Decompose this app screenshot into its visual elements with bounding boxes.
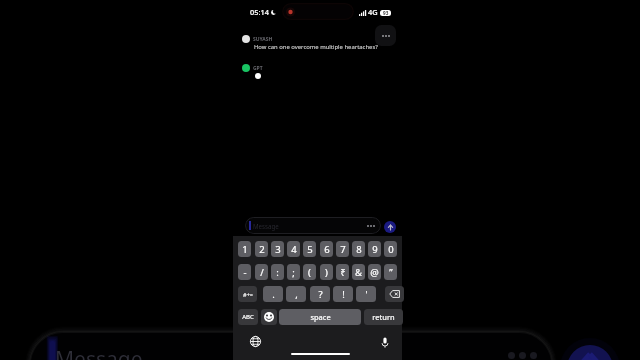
staticText: ₹ bbox=[340, 266, 346, 279]
button[interactable]: @ bbox=[368, 264, 381, 280]
button[interactable]: : bbox=[271, 264, 284, 280]
button[interactable]: Change keyboard bbox=[247, 333, 263, 349]
button[interactable]: ? bbox=[310, 286, 330, 302]
button[interactable]: return bbox=[364, 309, 403, 325]
button[interactable]: ! bbox=[333, 286, 353, 302]
staticText: 4 bbox=[291, 243, 297, 256]
button[interactable]: Message bbox=[245, 217, 381, 234]
staticText: 6 bbox=[324, 243, 330, 256]
staticText: return bbox=[372, 312, 395, 322]
button[interactable]: Voice input bbox=[377, 334, 393, 350]
staticText: . bbox=[272, 288, 275, 301]
button[interactable]: ABC bbox=[238, 309, 258, 325]
button[interactable]: 9 bbox=[368, 241, 381, 257]
staticText: / bbox=[260, 266, 264, 279]
button[interactable]: 3 bbox=[271, 241, 284, 257]
button[interactable]: space bbox=[279, 309, 361, 325]
staticText: 2 bbox=[259, 243, 265, 256]
staticText: ! bbox=[342, 288, 345, 301]
button[interactable]: ' bbox=[356, 286, 376, 302]
button[interactable]: 4 bbox=[287, 241, 300, 257]
button[interactable]: 2 bbox=[255, 241, 268, 257]
staticText: : bbox=[276, 266, 279, 279]
button[interactable]: 0 bbox=[384, 241, 397, 257]
staticText: @ bbox=[370, 266, 379, 279]
button[interactable]: Send bbox=[384, 221, 396, 233]
staticText: 5 bbox=[307, 243, 313, 256]
staticText: 4G bbox=[368, 7, 378, 17]
staticText: & bbox=[355, 266, 362, 279]
staticText: #+= bbox=[243, 291, 253, 298]
staticText: 8 bbox=[356, 243, 362, 256]
staticText: - bbox=[243, 266, 247, 279]
button[interactable]: . bbox=[263, 286, 283, 302]
button[interactable]: Emoji bbox=[261, 309, 277, 325]
staticText: ” bbox=[389, 266, 393, 279]
button[interactable]: - bbox=[238, 264, 251, 280]
button[interactable]: ( bbox=[303, 264, 316, 280]
staticText: ABC bbox=[242, 313, 254, 321]
staticText: Message bbox=[55, 345, 143, 360]
button[interactable]: More options bbox=[375, 25, 396, 46]
staticText: space bbox=[310, 312, 331, 322]
button[interactable]: / bbox=[255, 264, 268, 280]
button[interactable]: 7 bbox=[336, 241, 349, 257]
button[interactable]: ; bbox=[287, 264, 300, 280]
button[interactable]: 6 bbox=[320, 241, 333, 257]
button[interactable]: ₹ bbox=[336, 264, 349, 280]
staticText: Message bbox=[253, 222, 279, 230]
button[interactable]: , bbox=[286, 286, 306, 302]
staticText: , bbox=[295, 288, 298, 301]
button[interactable]: Backspace bbox=[385, 286, 404, 302]
button[interactable]: 8 bbox=[352, 241, 365, 257]
staticText: GPT bbox=[253, 65, 263, 72]
staticText: ? bbox=[318, 288, 323, 301]
button[interactable]: ” bbox=[384, 264, 397, 280]
button[interactable]: & bbox=[352, 264, 365, 280]
staticText: ' bbox=[365, 288, 368, 301]
button[interactable]: 5 bbox=[303, 241, 316, 257]
staticText: SUYASH bbox=[253, 36, 273, 43]
staticText: ) bbox=[325, 266, 328, 279]
staticText: ( bbox=[308, 266, 311, 279]
button[interactable]: #+= bbox=[238, 286, 257, 302]
staticText: 0 bbox=[388, 243, 394, 256]
button[interactable]: ) bbox=[320, 264, 333, 280]
staticText: 1 bbox=[242, 243, 248, 256]
staticText: 7 bbox=[340, 243, 346, 256]
button[interactable]: 1 bbox=[238, 241, 251, 257]
staticText: 9 bbox=[372, 243, 378, 256]
staticText: 05:14 bbox=[250, 7, 269, 17]
staticText: ; bbox=[292, 266, 295, 279]
staticText: 3 bbox=[275, 243, 281, 256]
staticText: 93 bbox=[383, 10, 389, 16]
staticText: How can one overcome multiple heartaches… bbox=[254, 43, 378, 51]
